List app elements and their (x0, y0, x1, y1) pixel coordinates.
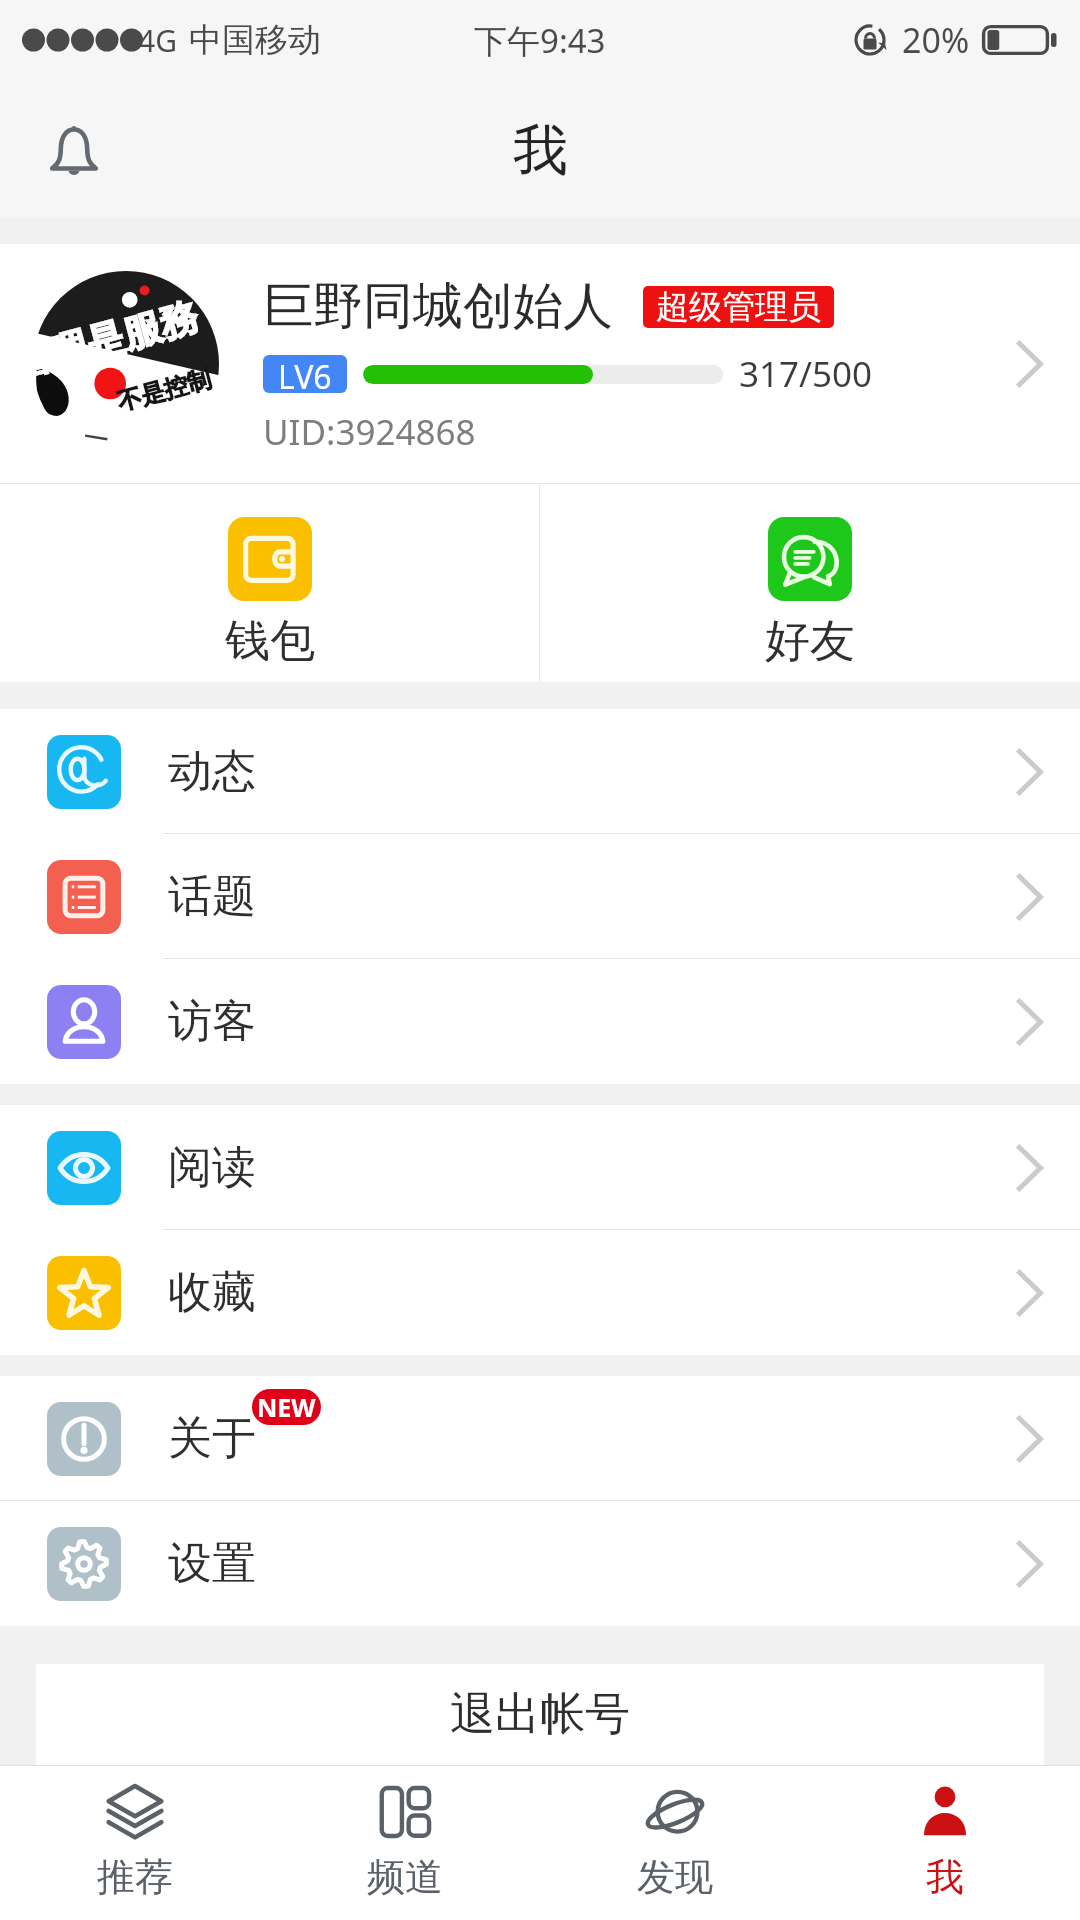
button[interactable]: 阅读 (0, 1105, 1080, 1230)
button[interactable]: 设置 (0, 1501, 1080, 1626)
staticText: 中国移动 (189, 19, 321, 61)
staticText: 4G (138, 20, 177, 61)
staticText: UID:3924868 (263, 408, 476, 456)
staticText: 不是控制 (114, 363, 215, 417)
staticText: 发现 (637, 1853, 713, 1901)
staticText: LV6 (278, 355, 332, 393)
staticText: 超级管理员 (656, 286, 821, 328)
staticText: 钱包 (225, 613, 315, 670)
staticText: 关于 (168, 1411, 256, 1466)
button[interactable]: 访客 (0, 959, 1080, 1084)
staticText: 我 (926, 1853, 964, 1901)
button[interactable]: 退出帐号 (36, 1664, 1044, 1765)
staticText: 退出帐号 (450, 1686, 630, 1743)
button[interactable]: Notifications (30, 105, 118, 193)
button[interactable]: 话题 (0, 834, 1080, 959)
staticText: 推荐 (97, 1853, 173, 1901)
staticText: 阅读 (168, 1140, 256, 1195)
staticText: 频道 (367, 1853, 443, 1901)
staticText: 话题 (168, 869, 256, 924)
button[interactable]: 管理是服務 (0, 244, 1080, 483)
button[interactable]: 收藏 (0, 1230, 1080, 1355)
button[interactable]: 推荐 (0, 1766, 270, 1920)
staticText: 巨野同城创始人 (263, 275, 613, 338)
button[interactable]: 发现 (540, 1766, 810, 1920)
button[interactable]: 关于 (0, 1376, 1080, 1501)
staticText: 317/500 (739, 350, 873, 398)
staticText: 动态 (168, 744, 256, 799)
staticText: 设置 (168, 1536, 256, 1591)
staticText: 20% (902, 17, 970, 63)
staticText: 下午9:43 (474, 18, 606, 63)
staticText: 我 (513, 116, 568, 185)
staticText: 管理是服務 (33, 292, 203, 388)
staticText: 好友 (765, 613, 855, 670)
staticText: NEW (257, 1390, 316, 1424)
button[interactable]: 我 (810, 1766, 1080, 1920)
staticText: 访客 (168, 994, 256, 1049)
button[interactable]: 钱包 (0, 484, 539, 682)
button[interactable]: 频道 (270, 1766, 540, 1920)
button[interactable]: 好友 (540, 484, 1080, 682)
button[interactable]: 动态 (0, 709, 1080, 834)
staticText: 收藏 (168, 1265, 256, 1320)
